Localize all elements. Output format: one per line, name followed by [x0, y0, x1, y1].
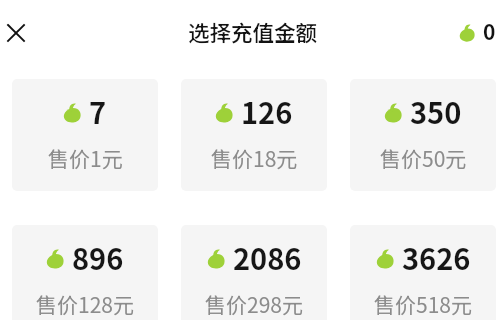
staticText: 896: [72, 236, 124, 278]
staticText: 2086: [233, 236, 302, 278]
button[interactable]: 3626: [350, 225, 496, 320]
button[interactable]: 896: [12, 225, 158, 320]
staticText: 7: [89, 90, 107, 132]
staticText: 售价18元: [211, 143, 298, 173]
staticText: 售价128元: [36, 289, 134, 319]
button[interactable]: 7: [12, 79, 158, 191]
button[interactable]: 126: [181, 79, 327, 191]
staticText: 售价50元: [380, 143, 467, 173]
staticText: 售价518元: [374, 289, 472, 319]
staticText: 售价298元: [205, 289, 303, 319]
button[interactable]: Balance: [459, 16, 496, 46]
staticText: 选择充值金额: [188, 16, 318, 47]
staticText: 0: [483, 16, 496, 46]
staticText: 126: [241, 90, 293, 132]
button[interactable]: 350: [350, 79, 496, 191]
button[interactable]: Close: [3, 20, 28, 45]
staticText: 售价1元: [48, 143, 123, 173]
staticText: 350: [410, 90, 462, 132]
button[interactable]: 2086: [181, 225, 327, 320]
staticText: 3626: [402, 236, 471, 278]
